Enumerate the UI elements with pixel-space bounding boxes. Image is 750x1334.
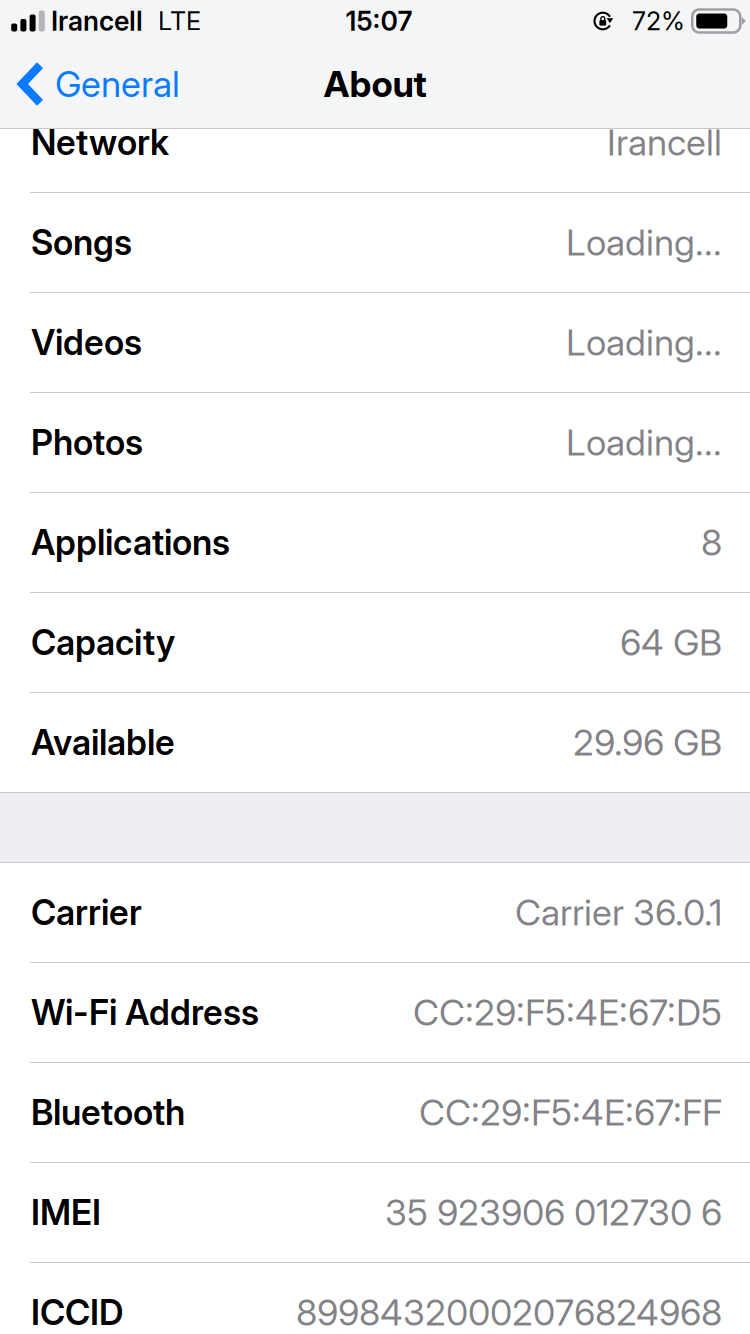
staticText: ICCID <box>31 1291 123 1333</box>
staticText: Network <box>31 121 169 163</box>
staticText: 29.96 GB <box>573 721 722 764</box>
staticText: Applications <box>31 521 230 563</box>
button[interactable]: Videos <box>0 293 750 392</box>
staticText: Irancell <box>51 5 143 37</box>
button[interactable]: IMEI <box>0 1163 750 1262</box>
button[interactable]: Network <box>0 93 750 192</box>
staticText: 35 923906 012730 6 <box>385 1191 722 1234</box>
staticText: 89984320002076824968 <box>296 1291 722 1334</box>
staticText: General <box>55 62 180 106</box>
staticText: Wi-Fi Address <box>31 991 259 1033</box>
button[interactable]: Carrier <box>0 863 750 962</box>
staticText: CC:29:F5:4E:67:FF <box>419 1091 722 1134</box>
staticText: Bluetooth <box>31 1091 185 1133</box>
button[interactable]: Bluetooth <box>0 1063 750 1162</box>
staticText: 8 <box>701 521 722 564</box>
button[interactable]: Wi-Fi Address <box>0 963 750 1062</box>
button[interactable]: Songs <box>0 193 750 292</box>
staticText: Loading... <box>566 421 722 464</box>
staticText: 72% <box>632 6 685 36</box>
staticText: Carrier <box>31 891 142 933</box>
staticText: Carrier 36.0.1 <box>515 891 722 934</box>
button[interactable]: Available <box>0 693 750 792</box>
staticText: IMEI <box>31 1191 101 1233</box>
staticText: CC:29:F5:4E:67:D5 <box>413 991 722 1034</box>
staticText: Loading... <box>566 321 722 364</box>
staticText: About <box>323 62 426 106</box>
staticText: Available <box>31 721 175 763</box>
button[interactable]: Capacity <box>0 593 750 692</box>
staticText: Songs <box>31 221 132 263</box>
staticText: 15:07 <box>345 5 412 37</box>
staticText: LTE <box>158 6 201 36</box>
button[interactable]: General <box>0 44 194 124</box>
staticText: 64 GB <box>620 621 722 664</box>
button[interactable]: ICCID <box>0 1263 750 1334</box>
button[interactable]: Photos <box>0 393 750 492</box>
staticText: Loading... <box>566 221 722 264</box>
staticText: Photos <box>31 421 143 463</box>
staticText: Capacity <box>31 621 175 663</box>
staticText: Irancell <box>607 121 722 164</box>
button[interactable]: Applications <box>0 493 750 592</box>
staticText: Videos <box>31 321 142 363</box>
